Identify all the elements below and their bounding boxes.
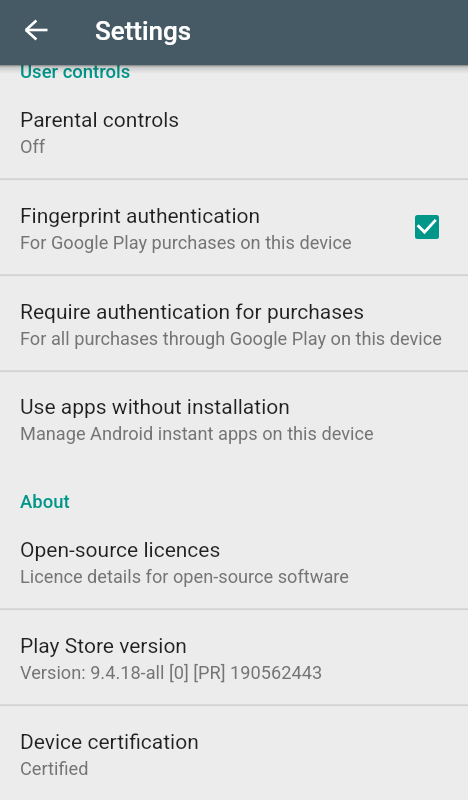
button[interactable]: Play Store version [0, 609, 468, 705]
staticText: Use apps without installation [20, 395, 290, 420]
button[interactable]: Open-source licences [0, 513, 468, 609]
button[interactable]: Device certification [0, 705, 468, 800]
button[interactable]: Fingerprint authentication [0, 179, 468, 275]
staticText: Manage Android instant apps on this devi… [20, 423, 374, 444]
staticText: Open-source licences [20, 538, 221, 563]
staticText: User controls [20, 61, 131, 83]
staticText: Device certification [20, 730, 199, 755]
button[interactable]: Use apps without installation [0, 370, 468, 466]
staticText: Parental controls [20, 108, 180, 133]
staticText: Settings [95, 16, 192, 46]
staticText: Play Store version [20, 634, 187, 659]
staticText: Certified [20, 758, 89, 779]
button[interactable]: Navigate up [16, 10, 61, 55]
staticText: Fingerprint authentication [20, 204, 261, 229]
staticText: Version: 9.4.18-all [0] [PR] 190562443 [20, 662, 323, 683]
staticText: Licence details for open-source software [20, 566, 349, 587]
staticText: For Google Play purchases on this device [20, 232, 352, 253]
staticText: Require authentication for purchases [20, 300, 364, 325]
button[interactable]: Fingerprint authentication checkbox [415, 215, 439, 239]
staticText: For all purchases through Google Play on… [20, 328, 442, 349]
staticText: Off [20, 136, 46, 157]
button[interactable]: Parental controls [0, 83, 468, 179]
button[interactable]: Require authentication for purchases [0, 275, 468, 371]
staticText: About [20, 491, 70, 513]
